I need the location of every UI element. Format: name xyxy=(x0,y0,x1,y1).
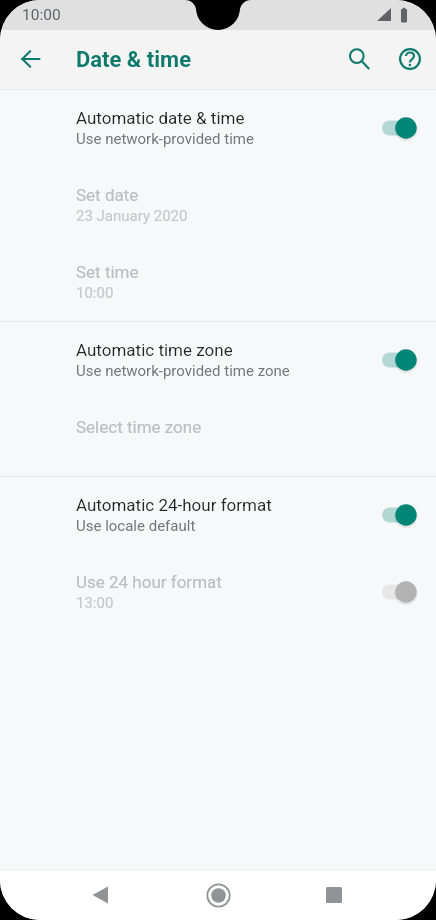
button[interactable]: Automatic date & time xyxy=(0,90,436,167)
staticText: 10:00 xyxy=(22,6,61,24)
button[interactable]: Recent apps xyxy=(310,870,358,920)
staticText: 13:00 xyxy=(76,594,114,612)
staticText: Use network-provided time xyxy=(76,130,254,148)
staticText: Set time xyxy=(76,262,139,282)
staticText: Select time zone xyxy=(76,417,202,437)
button[interactable]: Navigate up xyxy=(6,35,54,83)
button[interactable]: Back xyxy=(76,870,124,920)
staticText: Set date xyxy=(76,185,139,205)
staticText: Automatic date & time xyxy=(76,108,245,128)
button[interactable]: Use 24 hour format xyxy=(0,554,436,631)
button[interactable]: Set time xyxy=(0,244,436,321)
staticText: Automatic time zone xyxy=(76,340,233,360)
staticText: Use 24 hour format xyxy=(76,572,222,592)
button[interactable]: Automatic time zone xyxy=(0,322,436,399)
staticText: Use network-provided time zone xyxy=(76,362,290,380)
button[interactable]: Set date xyxy=(0,167,436,244)
button[interactable]: Help xyxy=(386,35,434,83)
staticText: Date & time xyxy=(76,47,192,73)
staticText: Use locale default xyxy=(76,517,196,535)
button[interactable]: Automatic 24-hour format xyxy=(0,477,436,554)
staticText: 23 January 2020 xyxy=(76,207,188,225)
button[interactable]: Select time zone xyxy=(0,399,436,476)
staticText: Automatic 24-hour format xyxy=(76,495,272,515)
button[interactable]: Home xyxy=(194,870,242,920)
staticText: 10:00 xyxy=(76,284,114,302)
button[interactable]: Search xyxy=(335,35,383,83)
